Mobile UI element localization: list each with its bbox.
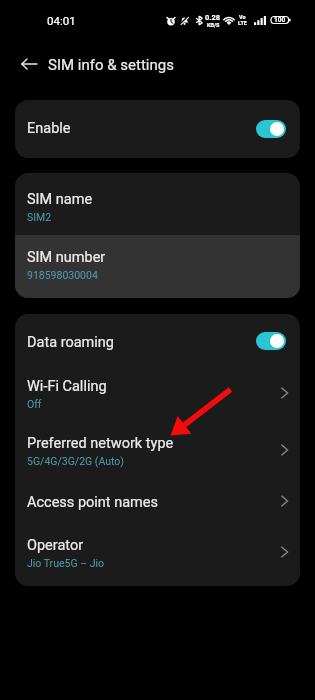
staticText: SIM name <box>27 191 93 208</box>
staticText: Jio True5G – Jio <box>27 557 105 569</box>
button[interactable]: Back <box>13 48 45 80</box>
button[interactable]: Toggle <box>256 332 286 350</box>
staticText: 100 <box>274 16 286 24</box>
staticText: Wi-Fi Calling <box>27 378 107 395</box>
staticText: 5G/4G/3G/2G (Auto) <box>27 455 124 467</box>
button[interactable]: Access point names <box>15 478 300 530</box>
button[interactable]: Operator <box>15 530 300 586</box>
button[interactable]: SIM name <box>15 173 300 235</box>
staticText: Vo <box>239 14 246 20</box>
staticText: Enable <box>27 120 71 137</box>
staticText: 0.28 <box>205 13 221 22</box>
staticText: LTE <box>238 20 247 26</box>
staticText: Data roaming <box>27 334 114 351</box>
staticText: Off <box>27 398 42 410</box>
staticText: KB/S <box>207 22 220 28</box>
staticText: Preferred network type <box>27 435 174 452</box>
staticText: Access point names <box>27 494 158 511</box>
staticText: Operator <box>27 537 84 554</box>
button[interactable]: Enable <box>15 100 300 158</box>
staticText: SIM number <box>27 249 106 266</box>
button[interactable]: Data roaming <box>15 314 300 368</box>
staticText: SIM info & settings <box>48 56 174 74</box>
button[interactable]: Toggle <box>256 120 286 138</box>
staticText: 04:01 <box>47 14 76 27</box>
button[interactable]: Wi-Fi Calling <box>15 368 300 423</box>
button[interactable]: Preferred network type <box>15 423 300 478</box>
staticText: 918598030004 <box>27 269 98 281</box>
staticText: SIM2 <box>27 211 52 223</box>
button[interactable]: SIM number <box>15 235 300 298</box>
